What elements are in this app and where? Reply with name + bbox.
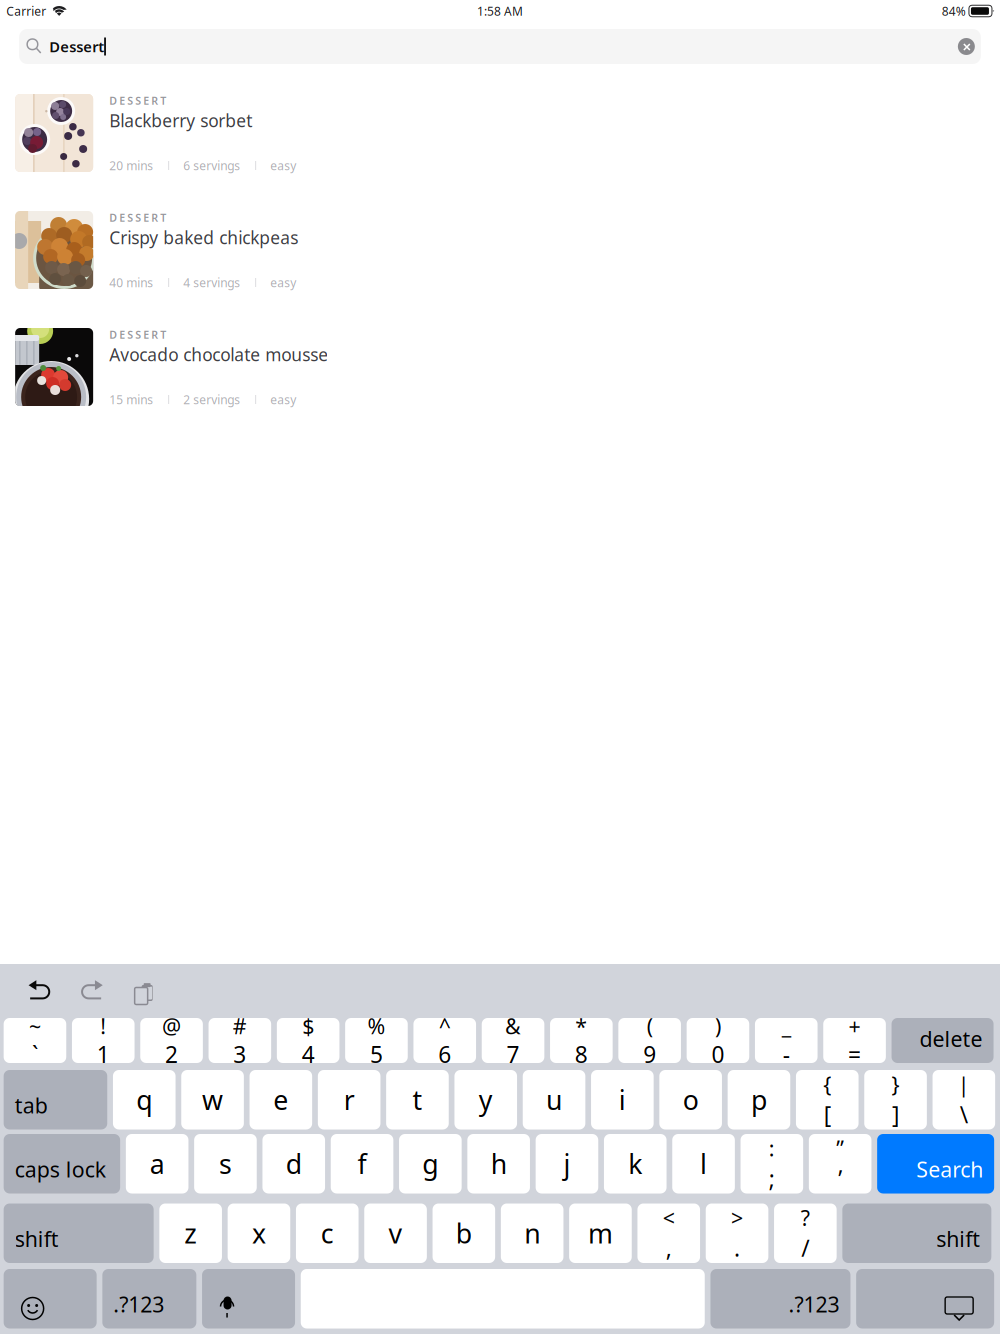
button[interactable]: tab: [4, 1070, 107, 1129]
staticText: shift: [15, 1225, 59, 1253]
staticText: tab: [15, 1091, 48, 1119]
staticText: 0: [711, 1039, 724, 1069]
button[interactable]: caps lock: [4, 1134, 120, 1193]
button[interactable]: a: [126, 1134, 188, 1193]
button[interactable]: &: [482, 1018, 544, 1063]
button[interactable]: D E S S E R T: [0, 319, 1000, 436]
staticText: u: [546, 1082, 562, 1117]
button[interactable]: %: [345, 1018, 408, 1063]
staticText: 6 servings: [183, 157, 240, 173]
button[interactable]: !: [72, 1018, 134, 1063]
staticText: ”: [836, 1134, 844, 1162]
button[interactable]: j: [536, 1134, 598, 1193]
staticText: %: [367, 1012, 385, 1040]
button[interactable]: d: [262, 1134, 325, 1193]
button[interactable]: Redo: [77, 979, 103, 1003]
button[interactable]: f: [331, 1134, 393, 1193]
staticText: k: [628, 1146, 642, 1181]
button[interactable]: (: [618, 1018, 681, 1063]
staticText: @: [162, 1012, 181, 1040]
button[interactable]: g: [399, 1134, 462, 1193]
staticText: 6: [438, 1039, 451, 1069]
staticText: e: [273, 1082, 288, 1117]
button[interactable]: Paste: [128, 979, 150, 1003]
button[interactable]: q: [113, 1070, 175, 1129]
button[interactable]: D E S S E R T: [0, 85, 1000, 202]
button[interactable]: v: [364, 1203, 427, 1263]
button[interactable]: .?123: [102, 1269, 196, 1328]
button[interactable]: >: [706, 1203, 768, 1263]
button[interactable]: D E S S E R T: [0, 202, 1000, 319]
button[interactable]: s: [194, 1134, 257, 1193]
staticText: .: [734, 1233, 740, 1263]
staticText: 84%: [942, 3, 966, 19]
button[interactable]: i: [591, 1070, 654, 1129]
button[interactable]: z: [159, 1203, 222, 1263]
button[interactable]: x: [228, 1203, 290, 1263]
button[interactable]: .?123: [710, 1269, 850, 1328]
button[interactable]: t: [386, 1070, 449, 1129]
button[interactable]: n: [501, 1203, 563, 1263]
staticText: *: [575, 1012, 587, 1040]
button[interactable]: ”: [809, 1134, 871, 1193]
staticText: i: [619, 1082, 626, 1117]
staticText: +: [848, 1012, 860, 1040]
staticText: ;: [769, 1163, 775, 1193]
button[interactable]: :: [740, 1134, 803, 1193]
button[interactable]: y: [454, 1070, 517, 1129]
staticText: 9: [643, 1039, 656, 1069]
button[interactable]: $: [277, 1018, 339, 1063]
button[interactable]: k: [604, 1134, 666, 1193]
button[interactable]: ~: [4, 1018, 66, 1063]
button[interactable]: Search: [877, 1134, 994, 1193]
staticText: m: [588, 1215, 613, 1251]
button[interactable]: e: [249, 1070, 312, 1129]
button[interactable]: delete: [891, 1018, 993, 1063]
button[interactable]: Emoji: [4, 1269, 97, 1328]
button[interactable]: |: [932, 1070, 995, 1129]
button[interactable]: b: [432, 1203, 495, 1263]
button[interactable]: <: [637, 1203, 700, 1263]
staticText: 20 mins: [109, 157, 153, 173]
staticText: p: [751, 1082, 767, 1117]
button[interactable]: c: [296, 1203, 358, 1263]
staticText: 8: [575, 1039, 588, 1069]
button[interactable]: +: [823, 1018, 886, 1063]
button[interactable]: h: [467, 1134, 530, 1193]
staticText: ]: [892, 1099, 899, 1129]
staticText: !: [100, 1012, 106, 1040]
staticText: D E S S E R T: [109, 93, 166, 108]
staticText: Carrier: [6, 3, 46, 19]
staticText: 2 servings: [183, 391, 240, 407]
button[interactable]: }: [864, 1070, 927, 1129]
button[interactable]: u: [523, 1070, 585, 1129]
button[interactable]: ?: [774, 1203, 837, 1263]
staticText: #: [233, 1012, 247, 1040]
button[interactable]: m: [569, 1203, 632, 1263]
button[interactable]: ): [687, 1018, 749, 1063]
staticText: .?123: [113, 1290, 164, 1318]
button[interactable]: #: [208, 1018, 271, 1063]
button[interactable]: Hide keyboard: [856, 1269, 994, 1328]
button[interactable]: w: [181, 1070, 244, 1129]
button[interactable]: {: [796, 1070, 858, 1129]
button[interactable]: Undo: [28, 979, 54, 1003]
staticText: ?: [801, 1203, 810, 1232]
button[interactable]: _: [755, 1018, 817, 1063]
button[interactable]: r: [318, 1070, 380, 1129]
staticText: |: [958, 1070, 970, 1098]
staticText: ^: [439, 1012, 451, 1040]
button[interactable]: Clear search: [958, 38, 975, 55]
button[interactable]: *: [550, 1018, 613, 1063]
button[interactable]: p: [728, 1070, 790, 1129]
button[interactable]: Dictation: [202, 1269, 295, 1328]
button[interactable]: shift: [4, 1203, 154, 1263]
button[interactable]: l: [672, 1134, 735, 1193]
button[interactable]: ^: [413, 1018, 476, 1063]
staticText: d: [286, 1146, 302, 1181]
button[interactable]: o: [659, 1070, 722, 1129]
button[interactable]: @: [140, 1018, 203, 1063]
staticText: shift: [936, 1225, 980, 1253]
button[interactable]: shift: [842, 1203, 991, 1263]
